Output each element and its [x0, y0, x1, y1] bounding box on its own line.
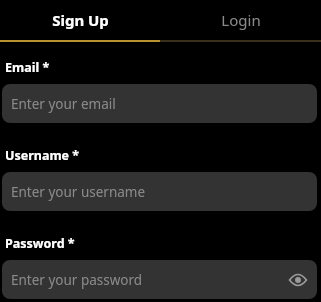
- button[interactable]: Enter your email: [2, 84, 317, 123]
- staticText: Email *: [5, 59, 50, 76]
- button[interactable]: Sign Up: [0, 0, 160, 40]
- staticText: Sign Up: [52, 10, 109, 30]
- button[interactable]: Login: [160, 0, 321, 40]
- staticText: Password *: [5, 235, 75, 252]
- staticText: Login: [221, 10, 261, 30]
- button[interactable]: Show password: [286, 268, 310, 292]
- staticText: Enter your email: [11, 95, 116, 113]
- staticText: Username *: [5, 147, 80, 164]
- staticText: Enter your username: [11, 183, 146, 201]
- button[interactable]: Enter your password: [2, 260, 317, 299]
- button[interactable]: Enter your username: [2, 172, 317, 211]
- staticText: Enter your password: [11, 271, 143, 289]
